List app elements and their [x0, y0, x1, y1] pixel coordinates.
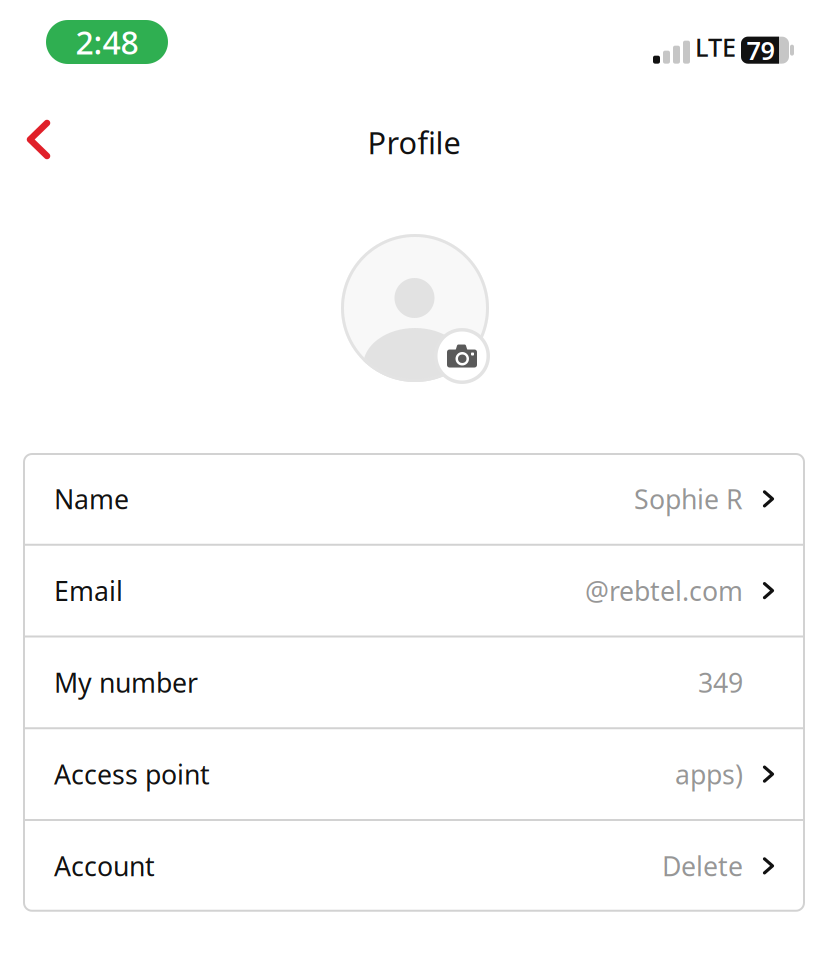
staticText: LTE — [695, 30, 736, 64]
button[interactable]: Account — [24, 821, 804, 911]
button[interactable]: Email — [24, 546, 804, 636]
staticText: Name — [54, 481, 129, 517]
button[interactable]: My number — [24, 637, 804, 727]
staticText: Sophie R — [634, 481, 743, 517]
staticText: 79 — [746, 33, 774, 67]
staticText: My number — [54, 665, 198, 700]
button[interactable]: Access point — [24, 729, 804, 819]
staticText: Account — [54, 848, 155, 884]
button[interactable]: Change profile photo — [434, 328, 490, 384]
staticText: Access point — [54, 756, 210, 792]
staticText: apps) — [675, 756, 743, 792]
button[interactable]: Name — [24, 454, 804, 544]
staticText: Delete — [662, 848, 743, 884]
staticText: @rebtel.com — [585, 573, 743, 608]
staticText: Profile — [367, 122, 460, 163]
staticText: 2:48 — [75, 21, 138, 63]
button[interactable]: Back — [6, 103, 71, 176]
staticText: Email — [54, 573, 123, 608]
staticText: 349 — [698, 665, 743, 700]
